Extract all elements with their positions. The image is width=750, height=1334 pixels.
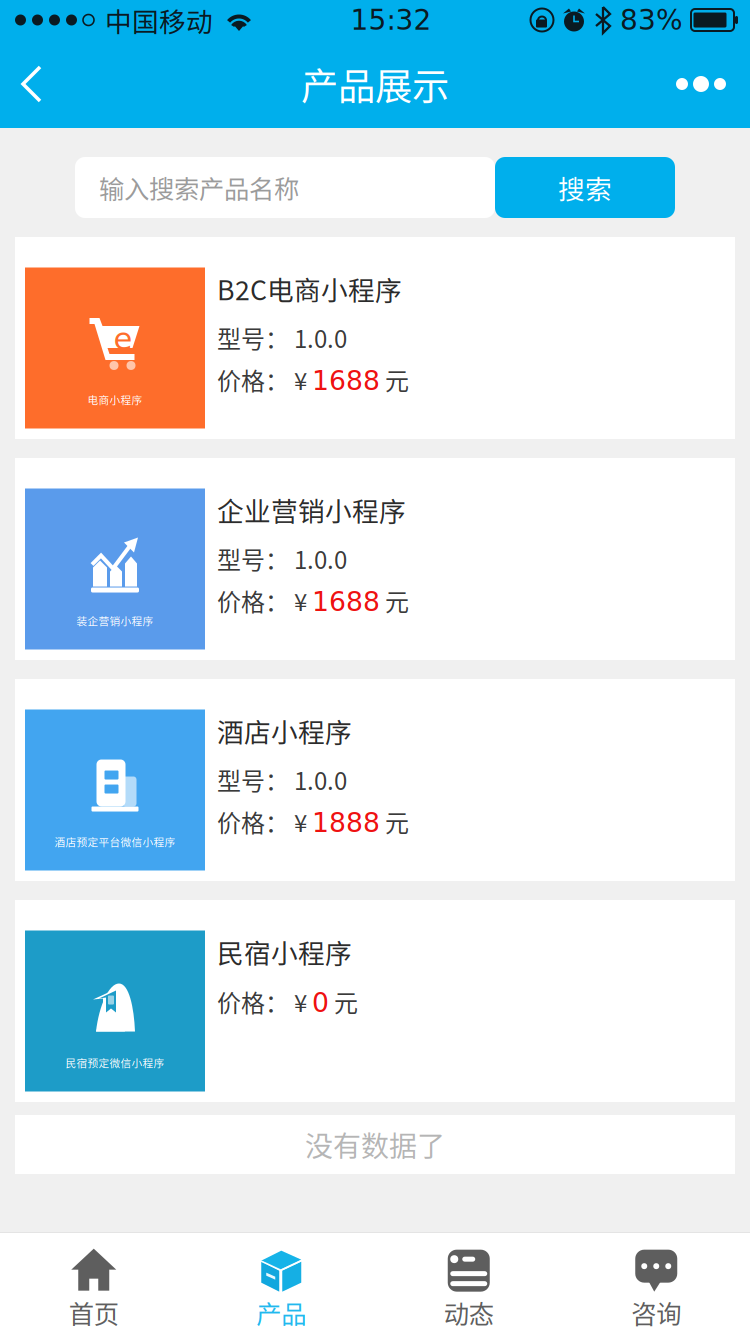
staticText: 产品展示 (301, 57, 449, 111)
staticText: 价格： ¥ (217, 804, 312, 839)
staticText: e (113, 321, 132, 357)
button[interactable]: Back (0, 41, 66, 127)
staticText: 没有数据了 (305, 1124, 445, 1165)
staticText: 民宿小程序 (217, 932, 352, 971)
button[interactable]: 首页 (0, 1232, 187, 1334)
button[interactable]: 装企营销小程序 (15, 458, 735, 660)
staticText: 型号： 1.0.0 (217, 320, 347, 355)
staticText: 动态 (444, 1294, 494, 1331)
staticText: 元 (329, 984, 358, 1019)
button[interactable]: 产品 (187, 1232, 375, 1334)
staticText: 元 (380, 804, 409, 839)
staticText: 价格： ¥ (217, 583, 312, 618)
staticText: 83% (620, 4, 683, 36)
button[interactable]: 酒店预定平台微信小程序 (15, 679, 735, 881)
staticText: 装企营销小程序 (76, 613, 153, 628)
staticText: 价格： ¥ (217, 984, 312, 1019)
staticText: 企业营销小程序 (217, 490, 406, 529)
staticText: 15:32 (350, 4, 431, 36)
staticText: 酒店小程序 (217, 711, 352, 750)
staticText: 酒店预定平台微信小程序 (54, 834, 175, 849)
staticText: 产品 (256, 1294, 306, 1331)
staticText: 元 (380, 583, 409, 618)
button[interactable]: More (652, 46, 750, 122)
button[interactable]: 搜索 (495, 157, 675, 218)
staticText: 1688 (312, 586, 380, 617)
staticText: 型号： 1.0.0 (217, 541, 347, 576)
staticText: 价格： ¥ (217, 362, 312, 397)
staticText: 0 (312, 987, 329, 1018)
staticText: 输入搜索产品名称 (99, 169, 299, 206)
staticText: B2C电商小程序 (217, 269, 402, 308)
staticText: 咨询 (631, 1294, 681, 1331)
button[interactable]: 民宿预定微信小程序 (15, 900, 735, 1102)
staticText: 1888 (312, 807, 380, 838)
staticText: 电商小程序 (87, 392, 142, 407)
staticText: 中国移动 (105, 1, 213, 39)
button[interactable]: e (15, 237, 735, 439)
button[interactable]: 咨询 (562, 1232, 750, 1334)
staticText: 首页 (69, 1294, 119, 1331)
staticText: 元 (380, 362, 409, 397)
button[interactable]: 动态 (375, 1232, 562, 1334)
staticText: 民宿预定微信小程序 (65, 1055, 164, 1070)
staticText: 搜索 (558, 168, 612, 207)
staticText: 型号： 1.0.0 (217, 762, 347, 797)
staticText: 1688 (312, 365, 380, 396)
